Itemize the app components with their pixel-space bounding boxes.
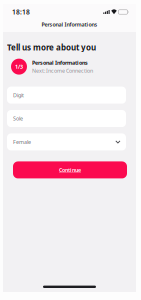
button[interactable]: Digit [7,87,126,104]
button[interactable]: Female [7,133,126,150]
staticText: Continue [59,166,81,173]
staticText: 1/3 [15,63,23,70]
button[interactable]: Sole [7,110,126,127]
staticText: Female [13,138,31,145]
staticText: Personal Informations [32,59,88,66]
staticText: 18:18 [12,8,30,16]
staticText: Next: Income Connection [32,67,93,74]
staticText: Tell us more about you [7,42,96,53]
staticText: Sole [13,115,23,122]
button[interactable]: Continue [13,161,127,178]
staticText: Digit [13,92,24,99]
staticText: Personal Informations [41,21,97,28]
